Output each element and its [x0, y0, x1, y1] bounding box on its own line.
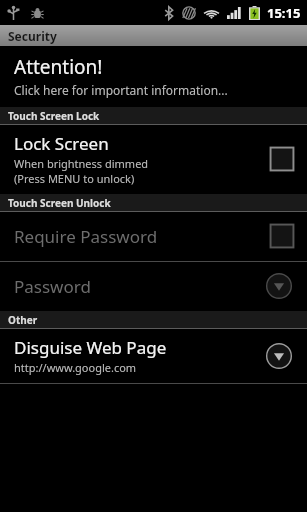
staticText: 15:15: [267, 4, 301, 22]
button[interactable]: Toggle checkbox: [269, 223, 295, 249]
button[interactable]: Open options: [265, 272, 293, 300]
staticText: Other: [8, 313, 38, 327]
button[interactable]: Toggle checkbox: [269, 146, 295, 172]
staticText: Require Password: [14, 225, 269, 248]
staticText: When brightness dimmed: [14, 156, 149, 171]
staticText: Touch Screen Lock: [8, 109, 100, 123]
button[interactable]: Require Password: [0, 212, 307, 261]
staticText: Attention!: [14, 54, 103, 80]
staticText: http://www.google.com: [14, 360, 137, 375]
staticText: Touch Screen Unlock: [8, 196, 111, 210]
staticText: Password: [14, 275, 265, 298]
staticText: Lock Screen: [14, 132, 109, 155]
staticText: Disguise Web Page: [14, 336, 167, 359]
button[interactable]: Open options: [265, 342, 293, 370]
staticText: (Press MENU to unlock): [14, 171, 135, 186]
button[interactable]: Lock Screen: [0, 125, 307, 194]
button[interactable]: Password: [0, 262, 307, 311]
staticText: Click here for important information...: [14, 82, 228, 98]
button[interactable]: Attention!: [0, 46, 307, 107]
button[interactable]: Disguise Web Page: [0, 329, 307, 383]
staticText: Security: [8, 28, 57, 44]
